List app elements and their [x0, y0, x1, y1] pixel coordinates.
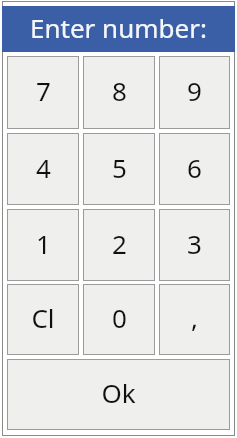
button[interactable]: Decimal comma — [159, 284, 230, 355]
staticText: Ok — [101, 375, 136, 410]
staticText: Cl — [31, 300, 55, 335]
staticText: 2 — [112, 226, 127, 261]
staticText: 6 — [187, 150, 202, 185]
staticText: 8 — [112, 73, 127, 108]
staticText: 4 — [36, 150, 51, 185]
staticText: 7 — [36, 73, 51, 108]
button[interactable]: Clear — [7, 284, 79, 355]
button[interactable]: Ok — [7, 359, 230, 430]
button[interactable]: Three — [159, 209, 230, 281]
button[interactable]: Two — [83, 209, 155, 281]
staticText: 1 — [36, 226, 51, 261]
button[interactable]: One — [7, 209, 79, 281]
button[interactable]: Eight — [83, 56, 155, 129]
button[interactable]: Five — [83, 133, 155, 205]
staticText: 9 — [187, 73, 202, 108]
button[interactable]: Four — [7, 133, 79, 205]
button[interactable]: Seven — [7, 56, 79, 129]
button[interactable]: Nine — [159, 56, 230, 129]
button[interactable]: Six — [159, 133, 230, 205]
staticText: 0 — [112, 300, 127, 335]
staticText: , — [191, 300, 198, 335]
staticText: 5 — [112, 150, 127, 185]
button[interactable]: Zero — [83, 284, 155, 355]
staticText: Enter number: — [30, 10, 207, 45]
staticText: 3 — [187, 226, 202, 261]
